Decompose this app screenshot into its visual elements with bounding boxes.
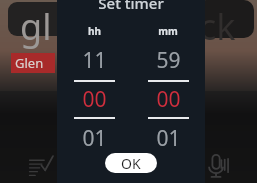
button[interactable]: Statistics	[24, 148, 58, 182]
button[interactable]: OK	[105, 153, 157, 173]
staticText: ck	[199, 2, 236, 51]
staticText: Set timer	[98, 0, 164, 13]
staticText: 01	[82, 124, 107, 153]
staticText: 01	[156, 124, 181, 153]
button[interactable]: Voice input	[200, 148, 236, 183]
staticText: 00	[156, 85, 181, 114]
staticText: Glen	[15, 54, 44, 72]
staticText: mm	[158, 24, 178, 38]
staticText: hh	[88, 24, 101, 38]
staticText: OK	[121, 154, 141, 173]
staticText: 59	[156, 46, 181, 75]
button[interactable]: 59	[131, 46, 205, 153]
staticText: 00	[82, 85, 107, 114]
staticText: gl	[20, 2, 52, 51]
button[interactable]: 11	[57, 46, 131, 153]
staticText: 11	[82, 46, 107, 75]
